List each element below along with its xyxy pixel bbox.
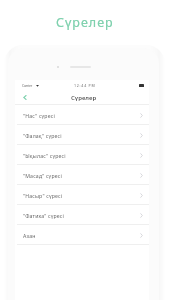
staticText: Carrier <box>22 83 32 88</box>
button[interactable]: "Фатиха" сүресі <box>15 205 149 225</box>
button[interactable]: "Масад" сүресі <box>15 165 149 185</box>
staticText: "Масад" сүресі <box>23 172 62 179</box>
button[interactable]: "Нас" сүресі <box>15 105 149 125</box>
staticText: "Фатиха" сүресі <box>23 212 64 219</box>
button[interactable]: Азан <box>15 225 149 245</box>
staticText: "Ықылас" сүресі <box>23 152 66 159</box>
button[interactable]: "Насыр" сүресі <box>15 185 149 205</box>
staticText: Сүрелер <box>56 14 114 31</box>
staticText: "Насыр" сүресі <box>23 192 63 199</box>
staticText: "Фалақ" сүресі <box>23 132 62 139</box>
staticText: 12:44 PM <box>74 83 96 88</box>
staticText: "Нас" сүресі <box>23 112 55 119</box>
staticText: Азан <box>23 232 36 239</box>
staticText: Сүрелер <box>71 94 97 102</box>
button[interactable]: "Фалақ" сүресі <box>15 125 149 145</box>
button[interactable]: "Ықылас" сүресі <box>15 145 149 165</box>
button[interactable]: Back <box>19 91 35 104</box>
